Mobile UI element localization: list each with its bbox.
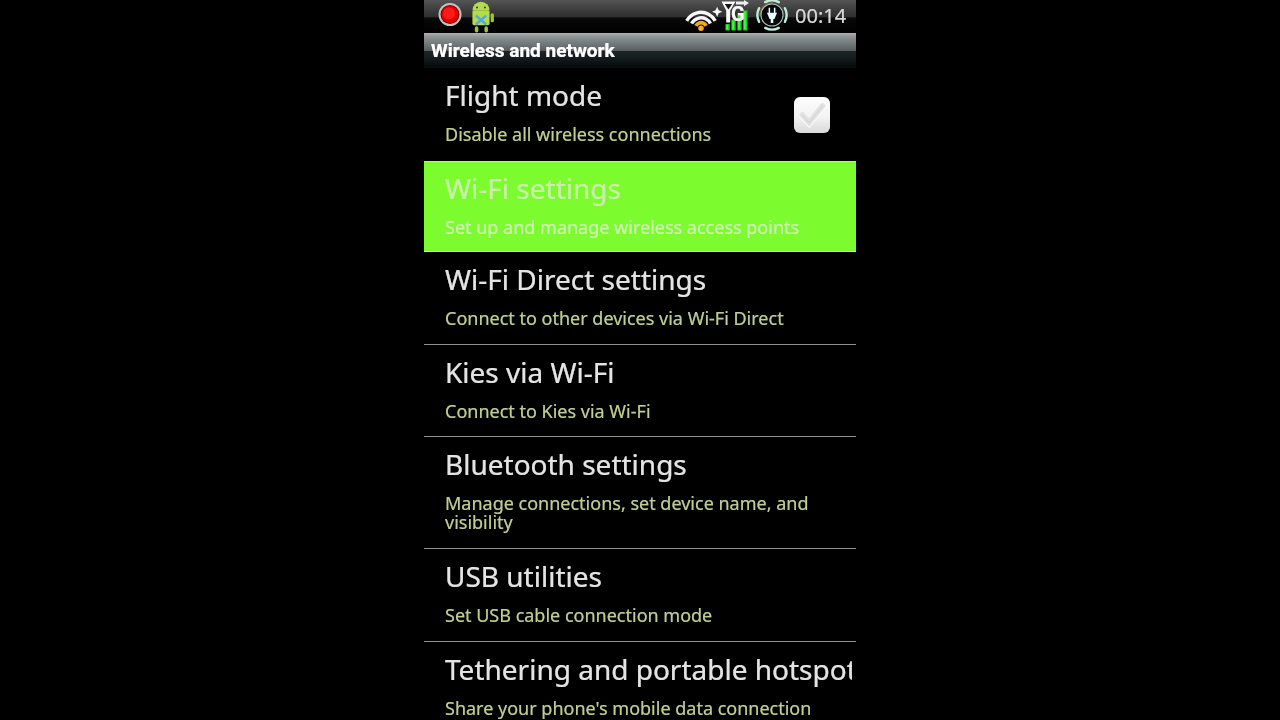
button[interactable]: Wi-Fi Direct settings bbox=[424, 252, 856, 344]
staticText: Wi-Fi Direct settings bbox=[445, 260, 707, 298]
staticText: Connect to other devices via Wi-Fi Direc… bbox=[445, 306, 784, 331]
staticText: USB utilities bbox=[445, 557, 602, 595]
staticText: Flight mode bbox=[445, 76, 603, 114]
staticText: Kies via Wi-Fi bbox=[445, 353, 615, 391]
staticText: Manage connections, set device name, and… bbox=[445, 491, 852, 535]
staticText: Wireless and network bbox=[431, 39, 615, 61]
staticText: Set USB cable connection mode bbox=[445, 603, 713, 628]
staticText: Wi-Fi settings bbox=[445, 169, 621, 207]
staticText: Connect to Kies via Wi-Fi bbox=[445, 399, 651, 424]
button[interactable]: Kies via Wi-Fi bbox=[424, 345, 856, 436]
button[interactable]: Tethering and portable hotspot bbox=[424, 642, 856, 720]
staticText: Bluetooth settings bbox=[445, 445, 687, 483]
staticText: Disable all wireless connections bbox=[445, 122, 712, 147]
staticText: Tethering and portable hotspot bbox=[445, 650, 852, 688]
button[interactable]: Bluetooth settings bbox=[424, 437, 856, 548]
staticText: Share your phone's mobile data connectio… bbox=[445, 696, 812, 720]
button[interactable]: USB utilities bbox=[424, 549, 856, 641]
button[interactable]: Flight mode bbox=[424, 68, 856, 161]
staticText: 00:14 bbox=[795, 2, 847, 29]
staticText: Set up and manage wireless access points bbox=[445, 215, 800, 240]
button[interactable]: Flight mode checkbox bbox=[794, 97, 830, 133]
staticText: G bbox=[731, 2, 745, 25]
button[interactable]: Wi-Fi settings bbox=[424, 161, 856, 252]
